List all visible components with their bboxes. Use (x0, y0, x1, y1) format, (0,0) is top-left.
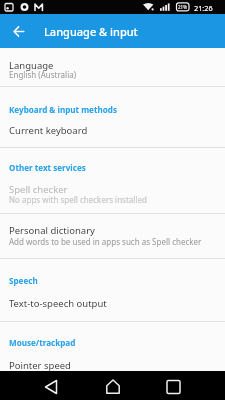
staticText: Language (9, 59, 54, 72)
button[interactable] (0, 351, 225, 371)
button[interactable] (0, 176, 225, 213)
button[interactable] (150, 371, 225, 400)
button[interactable] (0, 288, 225, 320)
staticText: No apps with spell checkers installed (9, 194, 147, 205)
staticText: Other text services (9, 162, 86, 173)
staticText: Spell checker (9, 183, 68, 196)
staticText: Current keyboard (9, 124, 88, 137)
button[interactable] (6, 24, 30, 42)
staticText: 21:26 (194, 3, 213, 13)
staticText: Add words to be used in apps such as Spe… (9, 236, 202, 247)
button[interactable] (0, 371, 75, 400)
button[interactable] (0, 116, 225, 146)
button[interactable] (75, 371, 150, 400)
staticText: Text-to-speech output (9, 297, 107, 310)
staticText: 21% (178, 4, 187, 10)
staticText: Speech (9, 275, 38, 286)
staticText: English (Australia) (9, 69, 77, 80)
staticText: Language & input (44, 24, 138, 39)
button[interactable] (0, 51, 225, 86)
button[interactable] (0, 214, 225, 256)
staticText: Mouse/trackpad (9, 337, 76, 348)
staticText: Keyboard & input methods (9, 104, 117, 115)
staticText: Personal dictionary (9, 224, 95, 237)
staticText: Pointer speed (9, 359, 71, 372)
